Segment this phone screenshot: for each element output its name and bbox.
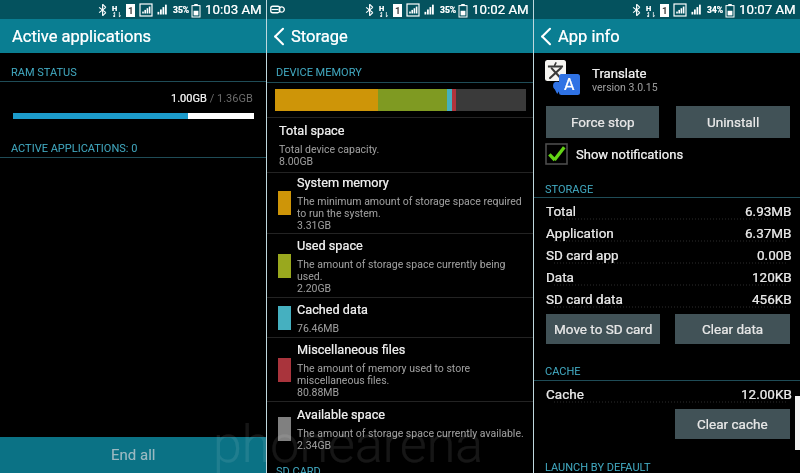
button[interactable]: Data (534, 264, 800, 286)
staticText: SD CARD (276, 465, 321, 473)
staticText: 35% (440, 5, 457, 15)
button[interactable]: Used space (267, 234, 533, 297)
staticText: Cached data (297, 302, 368, 317)
staticText: / 1.36GB (207, 92, 253, 105)
staticText: 34% (707, 5, 724, 15)
staticText: The amount of storage space currently av… (297, 427, 524, 439)
button[interactable]: Application (534, 220, 800, 242)
staticText: 1 (662, 5, 668, 16)
button[interactable]: Total space (267, 118, 533, 172)
button[interactable]: Miscellaneous files (267, 338, 533, 401)
staticText: Translate (592, 66, 647, 81)
button[interactable]: SD card data (534, 286, 800, 308)
staticText: 80.88MB (297, 386, 340, 398)
staticText: The amount of memory used to store misce… (297, 362, 471, 386)
button[interactable]: Clear cache (675, 409, 790, 439)
staticText: CACHE (545, 365, 581, 378)
button[interactable]: End all (0, 437, 266, 473)
button[interactable]: Available space (267, 402, 533, 456)
staticText: Move to SD card (554, 321, 653, 337)
button[interactable]: Force stop (546, 106, 659, 138)
staticText: phonearena (213, 414, 484, 473)
button[interactable]: Uninstall (676, 106, 790, 138)
staticText: 76.46MB (297, 322, 340, 334)
staticText: Data (546, 269, 574, 285)
staticText: LAUNCH BY DEFAULT (545, 461, 651, 473)
staticText: Total (546, 203, 577, 219)
staticText: App info (558, 27, 620, 46)
staticText: The amount of storage space currently be… (297, 258, 506, 282)
staticText: Uninstall (707, 114, 760, 130)
staticText: 10:02 AM (472, 2, 529, 18)
staticText: 6.37MB (745, 225, 792, 241)
staticText: Show notifications (576, 147, 684, 162)
staticText: 3.31GB (297, 219, 332, 231)
staticText: Clear cache (697, 416, 768, 432)
staticText: End all (111, 446, 156, 464)
button[interactable]: Navigate up (267, 19, 291, 53)
staticText: Force stop (571, 114, 635, 130)
staticText: 1 (128, 5, 134, 16)
staticText: Available space (297, 407, 386, 422)
staticText: 0.00B (757, 247, 792, 263)
staticText: SD card app (546, 247, 619, 263)
staticText: 2.20GB (297, 282, 332, 294)
staticText: The minimum amount of storage space requ… (297, 195, 522, 219)
staticText: DEVICE MEMORY (276, 66, 362, 79)
staticText: 12.00KB (741, 386, 792, 402)
staticText: 8.00GB (279, 155, 314, 167)
staticText: version 3.0.15 (592, 81, 658, 93)
staticText: RAM STATUS (11, 66, 77, 79)
staticText: Clear data (702, 321, 764, 337)
staticText: A (564, 75, 575, 94)
staticText: STORAGE (545, 183, 594, 196)
button[interactable]: Cache (534, 381, 800, 403)
staticText: ACTIVE APPLICATIONS: 0 (11, 142, 138, 155)
staticText: 2.34GB (297, 439, 332, 451)
staticText: 456KB (752, 291, 792, 307)
staticText: Miscellaneous files (297, 342, 406, 357)
staticText: Storage (291, 27, 348, 46)
staticText: Used space (297, 238, 363, 253)
staticText: Total device capacity. (279, 143, 380, 155)
button[interactable]: SD card app (534, 242, 800, 264)
staticText: Cache (546, 386, 584, 402)
staticText: 1 (395, 5, 401, 16)
button[interactable]: Cached data (267, 298, 533, 337)
staticText: 6.93MB (745, 203, 792, 219)
button[interactable]: System memory (267, 173, 533, 233)
staticText: System memory (297, 175, 389, 190)
staticText: Application (546, 225, 614, 241)
staticText: H+ (379, 4, 388, 17)
staticText: SD card data (546, 291, 623, 307)
button[interactable]: Show notifications (534, 138, 800, 170)
button[interactable]: Clear data (675, 314, 790, 344)
staticText: 120KB (752, 269, 792, 285)
button[interactable]: Navigate up (534, 19, 558, 53)
staticText: H+ (646, 4, 655, 17)
staticText: 10:07 AM (739, 2, 796, 18)
staticText: 1.00GB (171, 92, 207, 105)
staticText: H+ (112, 4, 121, 17)
staticText: Active applications (12, 27, 152, 46)
button[interactable]: Move to SD card (546, 314, 660, 344)
staticText: Total space (279, 123, 345, 138)
staticText: 10:03 AM (205, 2, 262, 18)
staticText: 35% (173, 5, 190, 15)
button[interactable]: Total (534, 198, 800, 220)
